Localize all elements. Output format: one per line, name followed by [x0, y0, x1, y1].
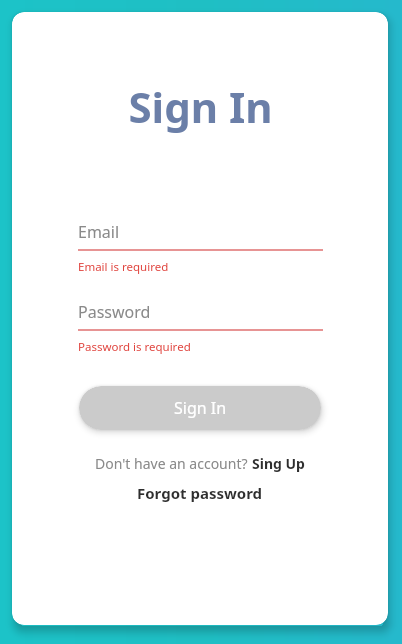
button[interactable]: Sign In	[79, 386, 321, 430]
staticText: Don't have an account?	[95, 454, 252, 473]
staticText: Sign In	[174, 397, 227, 419]
staticText: Email	[78, 221, 120, 243]
staticText: Password	[78, 301, 151, 323]
staticText: Sing Up	[252, 454, 305, 473]
button[interactable]: Email	[78, 221, 323, 275]
staticText: Sign In	[128, 78, 273, 135]
button[interactable]: Forgot password	[137, 483, 263, 503]
staticText: Password is required	[78, 339, 191, 355]
staticText: Forgot password	[137, 483, 263, 503]
button[interactable]: Sing Up	[252, 454, 305, 473]
button[interactable]: Password	[78, 301, 323, 355]
staticText: Email is required	[78, 259, 169, 275]
